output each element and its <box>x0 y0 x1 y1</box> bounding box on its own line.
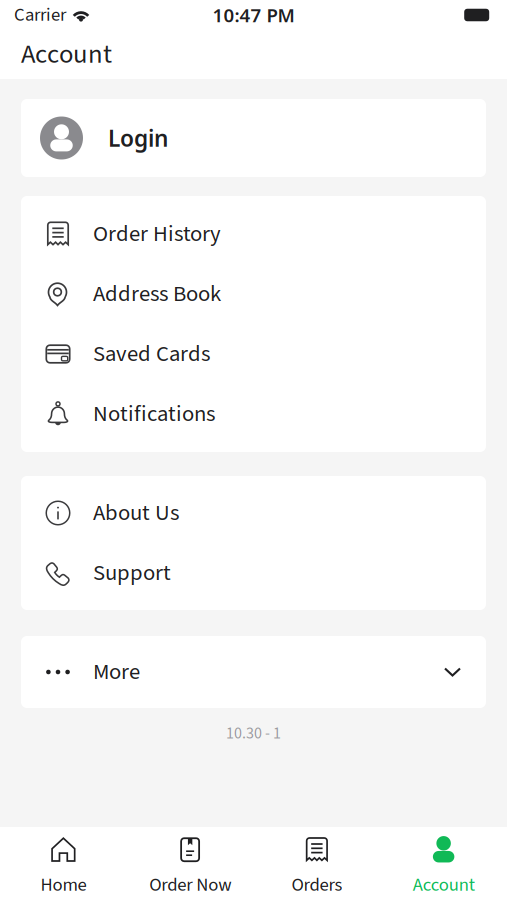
staticText: Account <box>21 35 112 73</box>
staticText: 10:47 PM <box>212 2 294 28</box>
button[interactable]: Login <box>21 99 486 177</box>
staticText: Notifications <box>93 398 215 430</box>
button[interactable]: Account <box>380 827 507 900</box>
button[interactable]: Support <box>21 543 486 603</box>
staticText: Carrier <box>14 2 66 28</box>
button[interactable]: Notifications <box>21 384 486 444</box>
staticText: Saved Cards <box>93 338 210 370</box>
staticText: Order History <box>93 218 221 250</box>
staticText: Login <box>108 123 168 153</box>
button[interactable]: About Us <box>21 483 486 543</box>
staticText: Support <box>93 557 171 589</box>
staticText: About Us <box>93 497 179 529</box>
staticText: Orders <box>291 872 342 898</box>
button[interactable]: Order History <box>21 204 486 264</box>
button[interactable]: Order Now <box>127 827 254 900</box>
button[interactable]: Orders <box>253 827 380 900</box>
button[interactable]: Saved Cards <box>21 324 486 384</box>
staticText: More <box>93 656 140 688</box>
staticText: Order Now <box>149 872 231 898</box>
staticText: Account <box>413 872 475 898</box>
staticText: Home <box>40 872 86 898</box>
staticText: 10.30 - 1 <box>226 722 281 745</box>
staticText: Address Book <box>93 278 221 310</box>
button[interactable]: Home <box>0 827 127 900</box>
button[interactable]: Address Book <box>21 264 486 324</box>
button[interactable]: More <box>21 642 486 702</box>
